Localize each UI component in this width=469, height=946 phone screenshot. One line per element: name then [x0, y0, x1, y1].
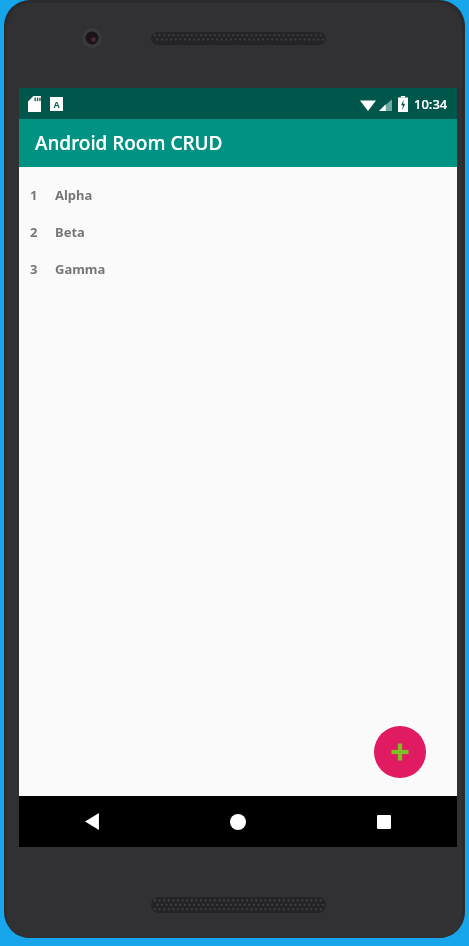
button[interactable]: Add item	[374, 726, 426, 778]
staticText: A	[53, 98, 60, 110]
button[interactable]: Home	[165, 796, 311, 847]
staticText: Gamma	[55, 260, 106, 278]
button[interactable]: 2	[19, 213, 457, 250]
staticText: Android Room CRUD	[35, 130, 223, 156]
staticText: 2	[30, 223, 38, 241]
button[interactable]: Recent apps	[311, 796, 457, 847]
staticText: Beta	[55, 223, 85, 241]
button[interactable]: Back	[19, 796, 165, 847]
button[interactable]: 3	[19, 250, 457, 287]
staticText: 1	[30, 186, 38, 204]
button[interactable]: 1	[19, 176, 457, 213]
staticText: 10:34	[414, 95, 448, 113]
staticText: 3	[30, 260, 38, 278]
staticText: Alpha	[55, 186, 93, 204]
